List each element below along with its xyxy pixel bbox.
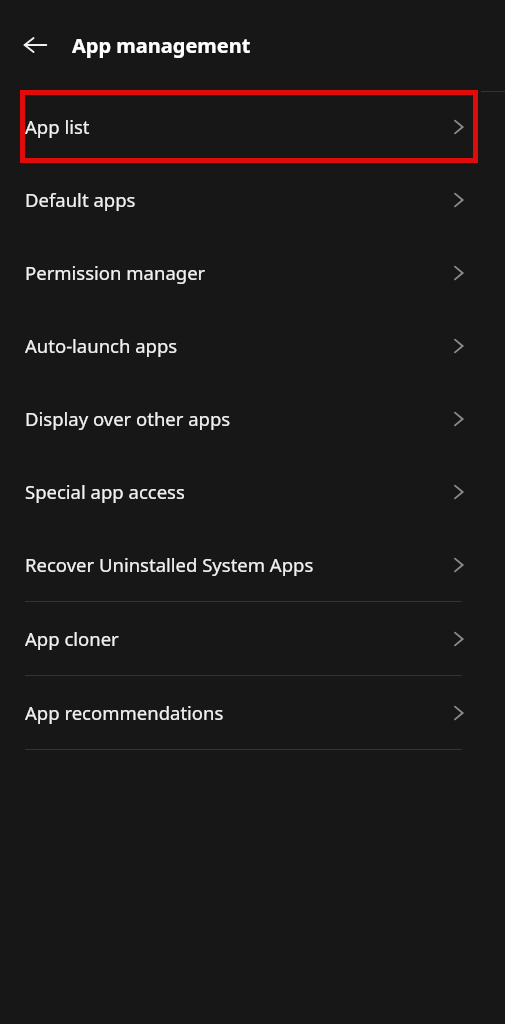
button[interactable]: Permission manager <box>0 236 505 309</box>
staticText: Recover Uninstalled System Apps <box>25 552 314 577</box>
button[interactable]: Back <box>13 23 57 67</box>
button[interactable]: App list <box>0 90 505 163</box>
button[interactable]: Default apps <box>0 163 505 236</box>
button[interactable]: App cloner <box>0 602 505 675</box>
button[interactable]: Special app access <box>0 455 505 528</box>
button[interactable]: App recommendations <box>0 676 505 749</box>
button[interactable]: Recover Uninstalled System Apps <box>0 528 505 601</box>
staticText: Permission manager <box>25 260 206 285</box>
staticText: Special app access <box>25 479 185 504</box>
button[interactable]: Auto-launch apps <box>0 309 505 382</box>
button[interactable]: Display over other apps <box>0 382 505 455</box>
staticText: App recommendations <box>25 700 224 725</box>
staticText: App list <box>25 114 90 139</box>
staticText: App cloner <box>25 626 119 651</box>
staticText: Auto-launch apps <box>25 333 178 358</box>
staticText: Display over other apps <box>25 406 231 431</box>
staticText: Default apps <box>25 187 136 212</box>
staticText: App management <box>72 32 251 59</box>
